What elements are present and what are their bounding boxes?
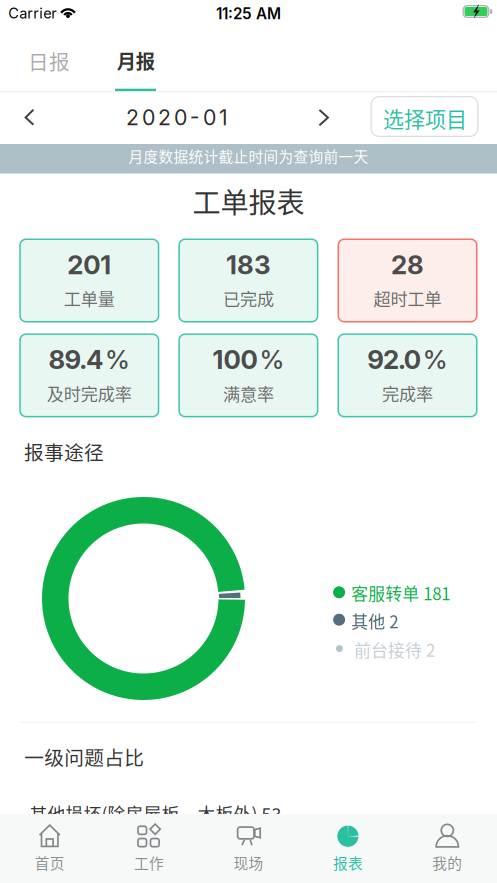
- staticText: 及时完成率: [47, 381, 132, 406]
- staticText: 28: [391, 249, 424, 280]
- staticText: 前台接待 2: [354, 637, 435, 662]
- button[interactable]: 日报: [0, 32, 88, 80]
- staticText: 89.4: [49, 344, 103, 375]
- staticText: 11:25 AM: [216, 4, 281, 23]
- button[interactable]: 报表: [298, 814, 398, 883]
- button[interactable]: 100: [178, 333, 318, 417]
- button[interactable]: 工作: [99, 814, 199, 883]
- button[interactable]: 201: [19, 238, 159, 322]
- staticText: 月度数据统计截止时间为查询前一天: [128, 145, 368, 166]
- staticText: %: [423, 344, 448, 375]
- staticText: 183: [226, 249, 271, 280]
- staticText: %: [259, 344, 284, 375]
- button[interactable]: Previous month: [11, 97, 51, 137]
- staticText: 其他 2: [351, 609, 398, 633]
- staticText: 超时工单: [373, 286, 441, 311]
- button[interactable]: 月报: [88, 32, 176, 80]
- staticText: 满意率: [223, 381, 274, 406]
- staticText: Carrier: [8, 4, 56, 22]
- button[interactable]: 我的: [398, 814, 497, 883]
- staticText: 201: [67, 249, 111, 280]
- staticText: 日报: [28, 46, 70, 76]
- staticText: 报事途径: [24, 437, 104, 466]
- staticText: 已完成: [223, 286, 274, 311]
- staticText: 月报: [117, 46, 155, 74]
- staticText: 100: [212, 344, 257, 375]
- button[interactable]: Next month: [304, 97, 344, 137]
- button[interactable]: 首页: [0, 814, 99, 883]
- staticText: 报表: [333, 852, 363, 873]
- staticText: 完成率: [382, 381, 433, 406]
- staticText: 一级问题占比: [24, 742, 144, 771]
- staticText: 工单报表: [192, 180, 304, 221]
- staticText: 我的: [432, 852, 462, 873]
- staticText: 其他损坏(除房屋板、木板外) 53: [30, 801, 282, 826]
- button[interactable]: 28: [337, 238, 477, 322]
- button[interactable]: 现场: [199, 814, 298, 883]
- staticText: %: [105, 344, 130, 375]
- button[interactable]: 89.4: [19, 333, 159, 417]
- staticText: 客服转单 181: [351, 581, 450, 605]
- staticText: 首页: [35, 852, 65, 873]
- staticText: 现场: [233, 852, 263, 873]
- staticText: 工作: [134, 852, 164, 873]
- staticText: 2020-01: [126, 105, 228, 130]
- staticText: 选择项目: [383, 103, 467, 133]
- button[interactable]: 183: [178, 238, 318, 322]
- button[interactable]: 92.0: [337, 333, 477, 417]
- button[interactable]: 选择项目: [370, 96, 478, 137]
- staticText: 92.0: [367, 344, 421, 375]
- staticText: 工单量: [64, 286, 115, 311]
